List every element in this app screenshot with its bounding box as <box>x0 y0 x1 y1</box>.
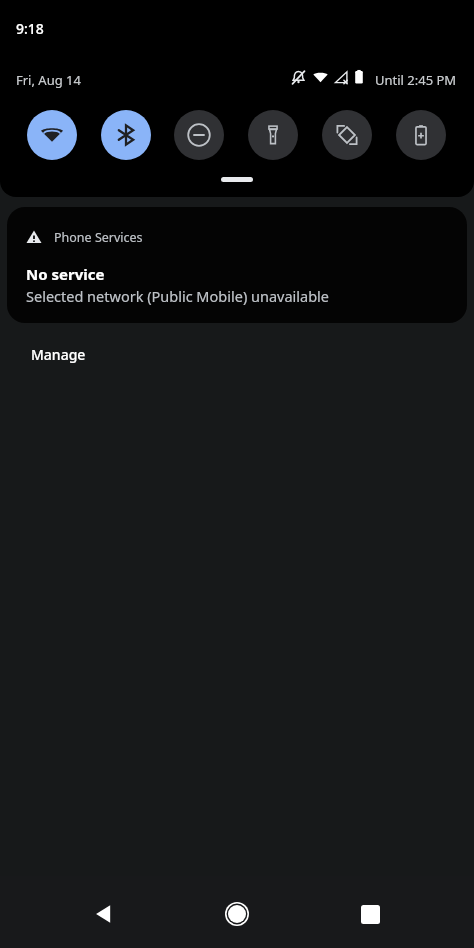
button[interactable]: Battery saver <box>396 110 446 160</box>
button[interactable]: Back <box>78 888 130 940</box>
button[interactable]: Internet <box>27 110 77 160</box>
button[interactable]: Manage <box>7 332 102 376</box>
staticText: 9:18 <box>16 19 44 38</box>
button[interactable]: Home <box>211 888 263 940</box>
staticText: Phone Services <box>54 229 143 246</box>
staticText: Until 2:45 PM <box>375 71 457 89</box>
button[interactable]: Auto rotate <box>322 110 372 160</box>
staticText: No service <box>26 264 105 284</box>
staticText: Fri, Aug 14 <box>16 71 81 89</box>
button[interactable]: Do not disturb <box>174 110 224 160</box>
staticText: Manage <box>31 345 86 364</box>
button[interactable]: Flashlight <box>248 110 298 160</box>
button[interactable]: Phone Services <box>7 207 467 323</box>
button[interactable]: Bluetooth <box>101 110 151 160</box>
button[interactable]: Recent apps <box>344 888 396 940</box>
staticText: Selected network (Public Mobile) unavail… <box>26 286 330 306</box>
